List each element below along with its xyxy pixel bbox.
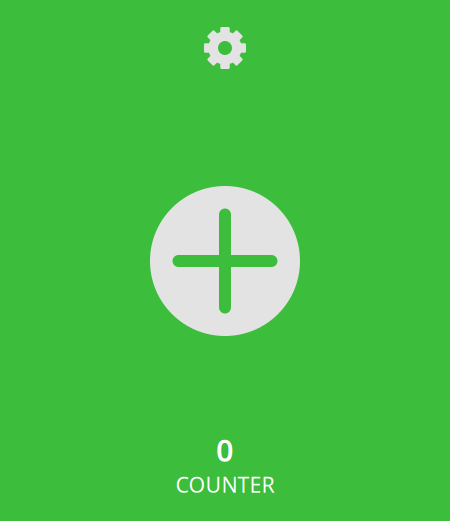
button[interactable]: Increment counter	[150, 186, 300, 336]
staticText: COUNTER	[175, 470, 274, 498]
staticText: 0	[216, 429, 234, 470]
button[interactable]: Settings	[194, 20, 256, 76]
